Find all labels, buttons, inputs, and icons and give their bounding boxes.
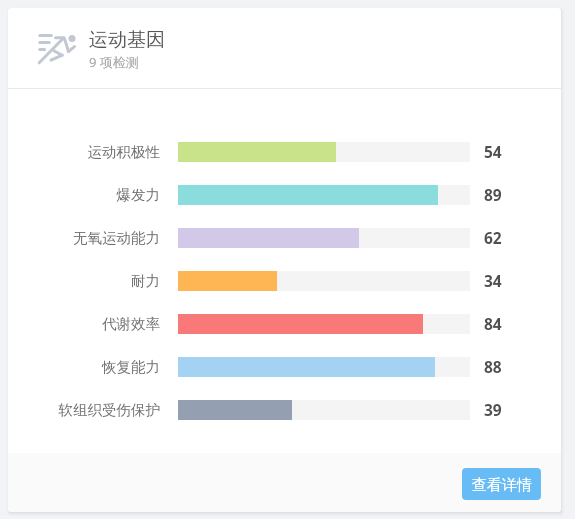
staticText: 84: [484, 313, 502, 333]
staticText: 耐力: [131, 272, 160, 290]
staticText: 恢复能力: [102, 358, 160, 376]
staticText: 9 项检测: [89, 53, 139, 71]
staticText: 89: [484, 184, 502, 204]
staticText: 代谢效率: [102, 315, 160, 333]
staticText: 查看详情: [472, 476, 532, 495]
staticText: 爆发力: [116, 186, 160, 204]
staticText: 88: [484, 356, 502, 376]
staticText: 软组织受伤保护: [58, 401, 160, 419]
staticText: 34: [484, 270, 502, 290]
staticText: 运动积极性: [87, 143, 160, 161]
staticText: 62: [484, 227, 502, 247]
button[interactable]: 查看详情: [462, 468, 541, 500]
staticText: 54: [484, 141, 502, 161]
staticText: 运动基因: [89, 28, 165, 52]
other: 运动基因: [36, 32, 78, 66]
staticText: 无氧运动能力: [73, 229, 160, 247]
staticText: 39: [484, 399, 502, 419]
